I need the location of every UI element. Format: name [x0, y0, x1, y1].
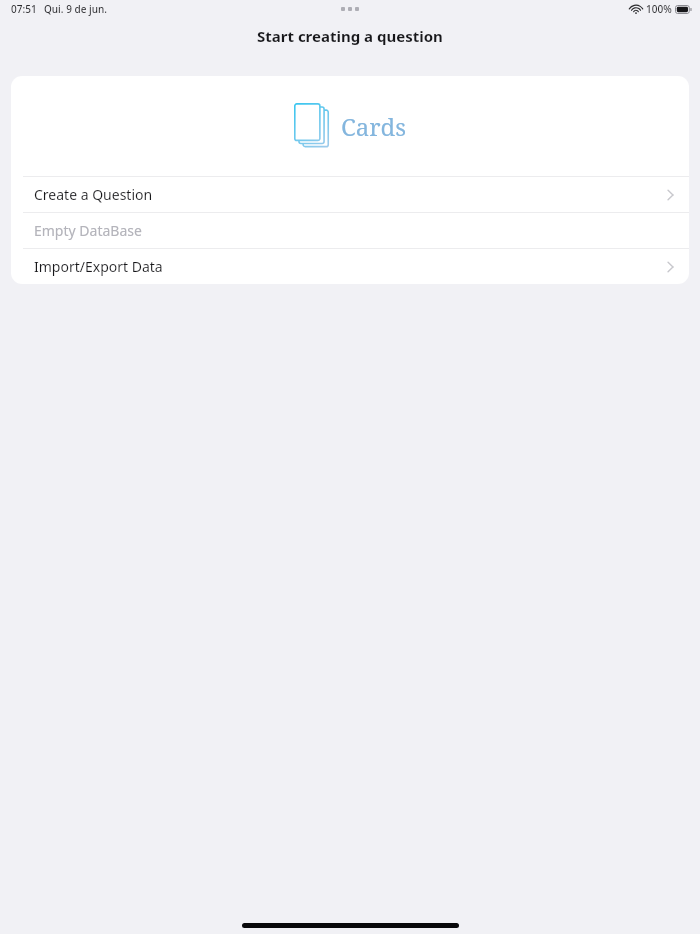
staticText: 07:51: [11, 2, 37, 16]
other: Open Create a Question: [667, 189, 674, 201]
staticText: Cards: [341, 110, 407, 143]
staticText: Qui. 9 de jun.: [44, 2, 107, 16]
staticText: Empty DataBase: [34, 221, 142, 240]
other: Open Import/Export Data: [667, 261, 674, 273]
button[interactable]: Import/Export Data: [11, 249, 689, 284]
staticText: 100%: [646, 2, 672, 16]
staticText: Start creating a question: [257, 26, 443, 46]
button[interactable]: Create a Question: [11, 177, 689, 212]
staticText: Create a Question: [34, 185, 153, 204]
staticText: Import/Export Data: [34, 257, 163, 276]
button[interactable]: Empty DataBase: [11, 213, 689, 248]
